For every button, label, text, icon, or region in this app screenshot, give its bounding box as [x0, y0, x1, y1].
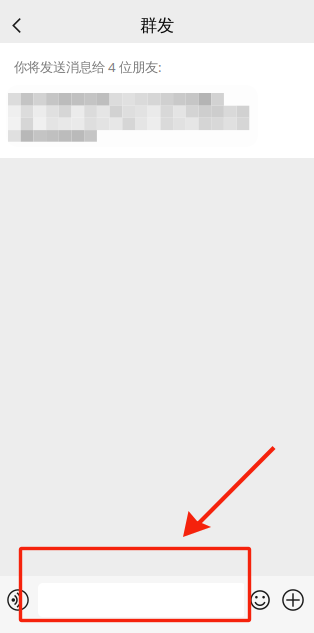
button[interactable]: Back — [0, 0, 40, 43]
button[interactable]: Voice input — [2, 580, 34, 620]
button[interactable]: More options — [277, 580, 309, 620]
staticText: 你将发送消息给 4 位朋友: — [14, 58, 162, 76]
button[interactable]: Emoji — [244, 580, 276, 620]
staticText: 群发 — [140, 15, 174, 36]
